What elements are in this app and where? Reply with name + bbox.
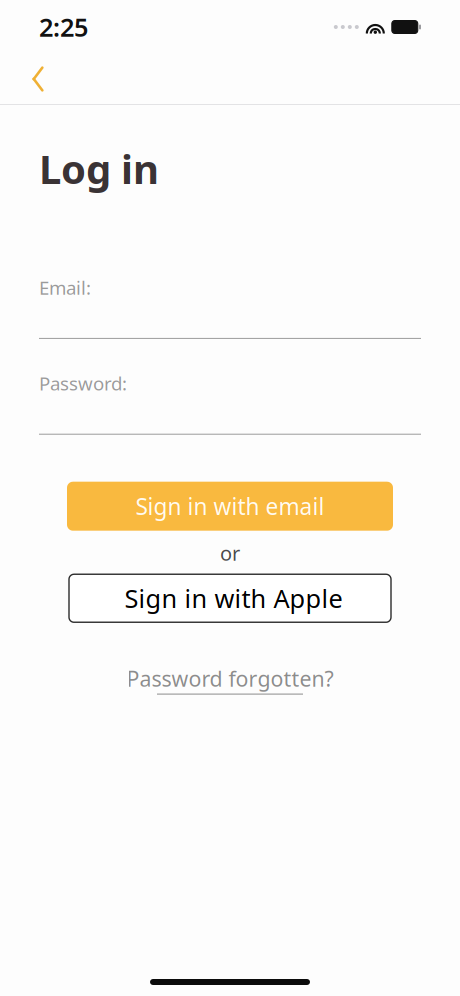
staticText: 2:25 [39, 10, 88, 44]
staticText: Sign in with email [135, 491, 324, 521]
button[interactable]: Back [14, 55, 62, 103]
staticText: Password forgotten? [126, 664, 333, 693]
staticText: or [220, 540, 240, 566]
button[interactable] [69, 574, 391, 622]
button[interactable]: Sign in with email [67, 482, 393, 531]
staticText: Sign in with Apple [124, 581, 342, 615]
button[interactable]: Password forgotten? [126, 664, 333, 695]
staticText: Log in [39, 142, 159, 195]
staticText: Password: [39, 371, 127, 396]
staticText: Email: [39, 275, 91, 300]
